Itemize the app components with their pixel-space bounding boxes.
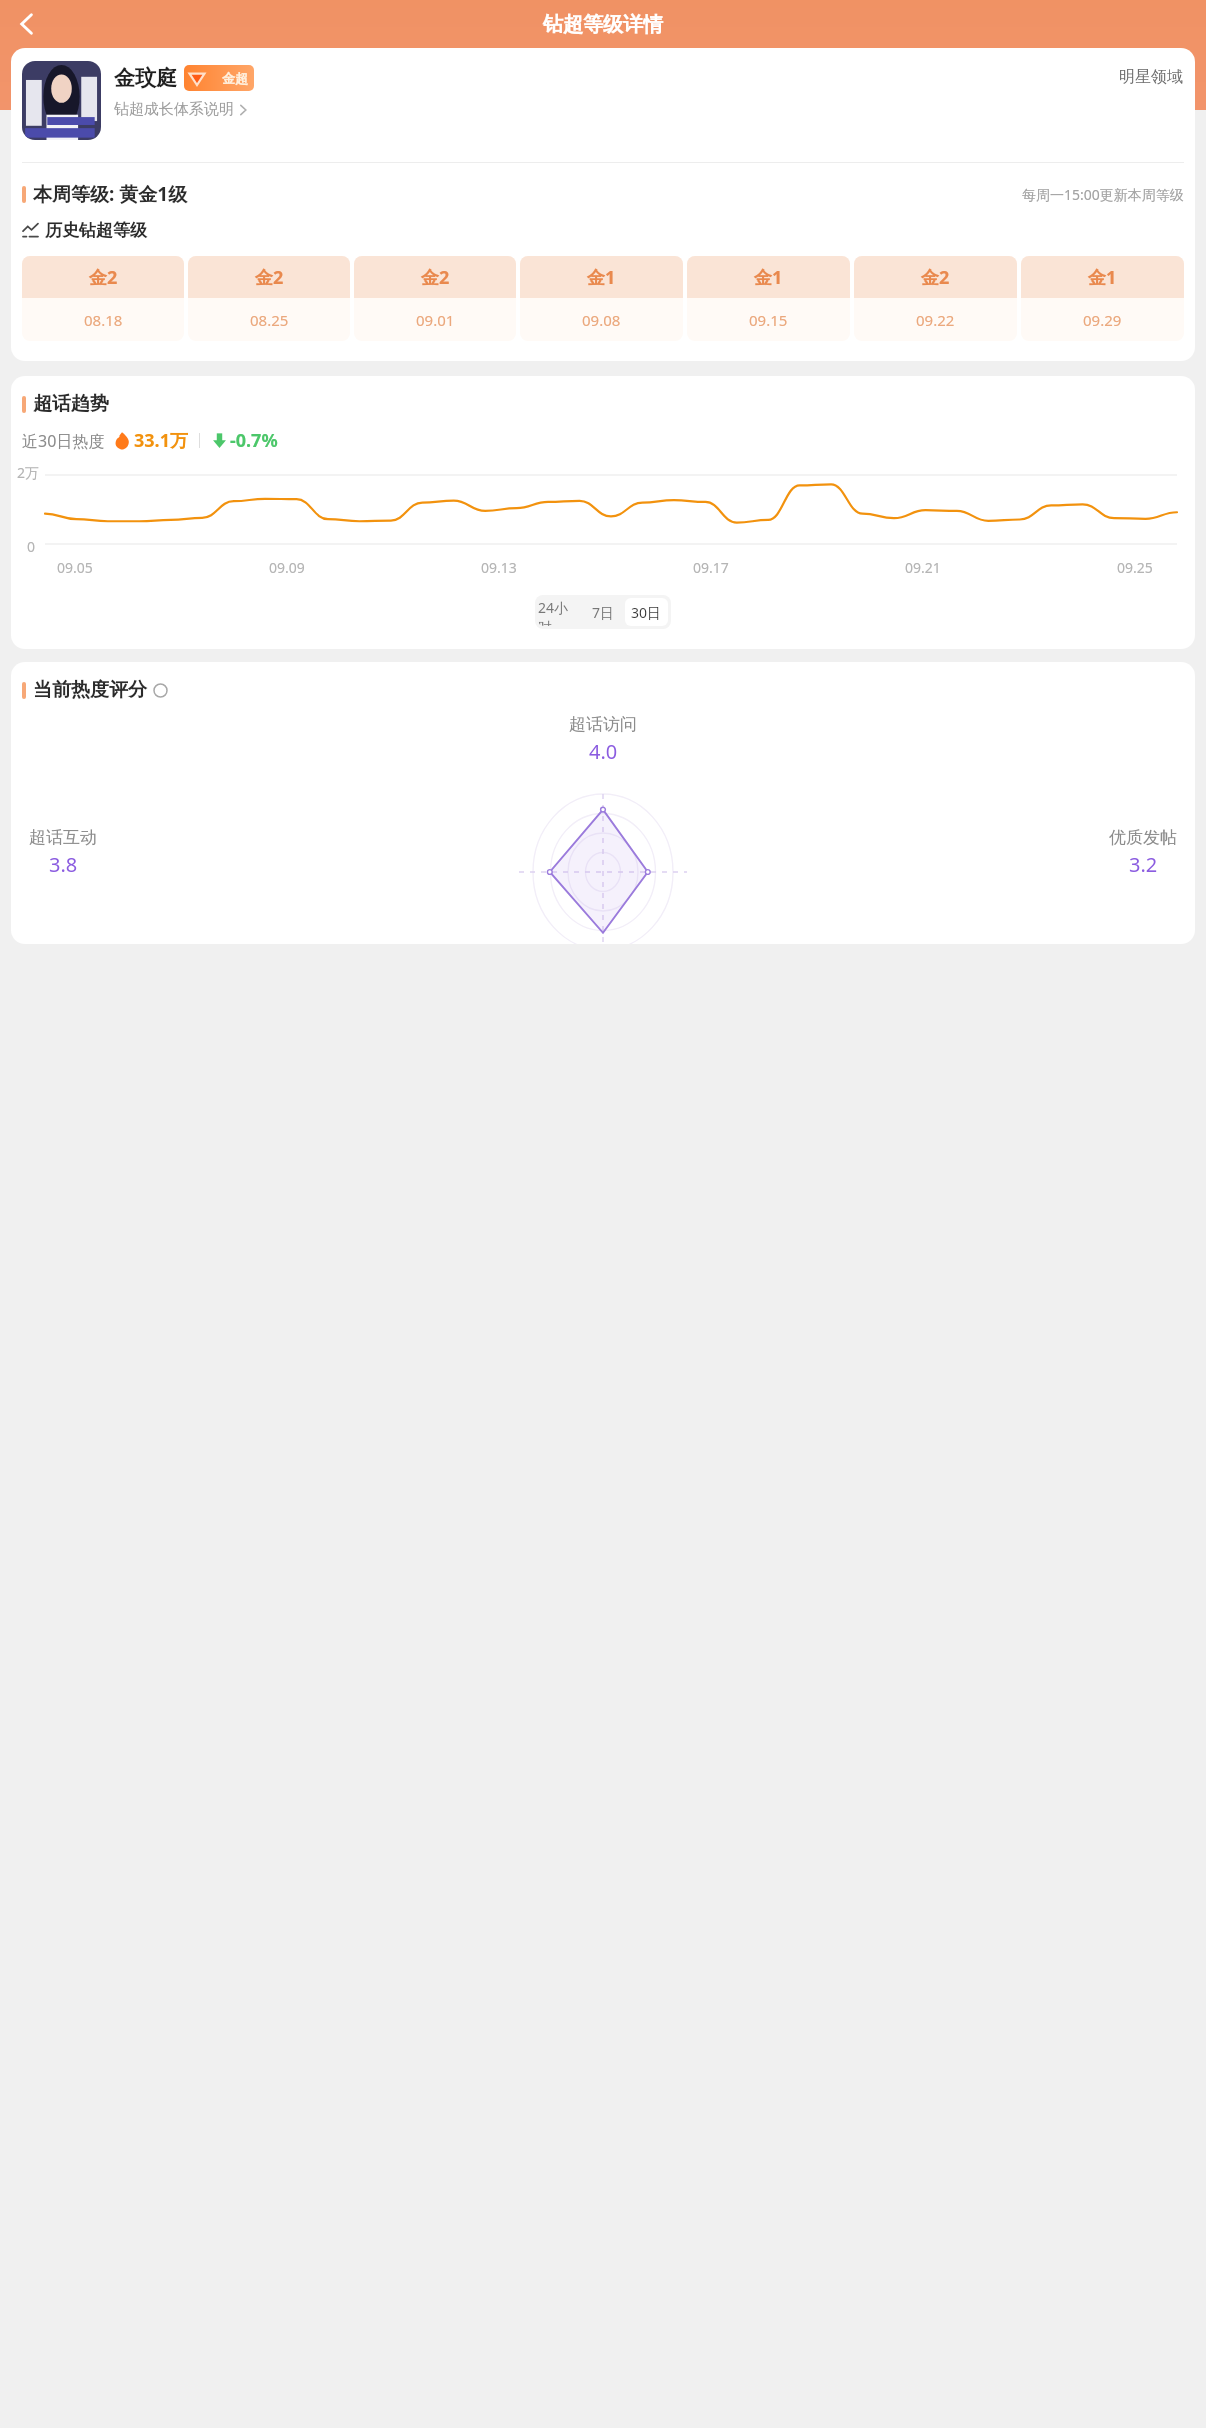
button[interactable]: 7日 (582, 598, 625, 626)
staticText: 超话互动 (29, 827, 97, 848)
staticText: 33.1万 (134, 428, 188, 453)
staticText: 金1 (754, 265, 783, 290)
staticText: 09.15 (749, 310, 788, 330)
staticText: 优质发帖 (1109, 827, 1177, 848)
button[interactable]: 金2 (22, 256, 184, 341)
staticText: 3.8 (49, 851, 78, 878)
staticText: 2万 (17, 463, 40, 482)
staticText: 金1 (587, 265, 616, 290)
staticText: 金2 (421, 265, 450, 290)
staticText: 历史钻超等级 (45, 220, 147, 241)
button[interactable]: 24小时 (538, 598, 582, 626)
staticText: 08.18 (84, 310, 123, 330)
staticText: 4.0 (589, 738, 618, 765)
staticText: 08.25 (250, 310, 289, 330)
button[interactable]: 金2 (188, 256, 350, 341)
staticText: 钻超成长体系说明 (114, 100, 234, 119)
staticText: 09.13 (481, 558, 517, 577)
staticText: 金2 (89, 265, 118, 290)
staticText: 当前热度评分 (33, 678, 147, 702)
button[interactable]: 金1 (520, 256, 683, 341)
staticText: 钻超等级详情 (543, 12, 663, 37)
staticText: 30日 (631, 603, 662, 622)
staticText: 09.25 (1117, 558, 1153, 577)
staticText: 09.09 (269, 558, 305, 577)
staticText: 超话趋势 (33, 392, 109, 416)
staticText: -0.7% (230, 428, 278, 453)
staticText: 09.21 (905, 558, 941, 577)
button[interactable]: Back (2, 0, 52, 48)
staticText: 金1 (1088, 265, 1117, 290)
staticText: 09.17 (693, 558, 729, 577)
staticText: 每周一15:00更新本周等级 (1022, 185, 1184, 204)
staticText: 24小时 (538, 598, 582, 626)
staticText: 金2 (921, 265, 950, 290)
staticText: 明星领域 (1119, 67, 1183, 87)
staticText: 0 (27, 537, 36, 556)
staticText: 近30日热度 (22, 430, 105, 452)
staticText: 09.08 (582, 310, 621, 330)
staticText: 金超 (222, 70, 248, 86)
button[interactable]: 金1 (687, 256, 850, 341)
staticText: 7日 (592, 603, 615, 622)
staticText: 金2 (255, 265, 284, 290)
staticText: 3.2 (1129, 851, 1158, 878)
staticText: 超话访问 (569, 714, 637, 735)
button[interactable]: 30日 (625, 598, 668, 626)
staticText: 09.05 (57, 558, 93, 577)
staticText: 本周等级: 黄金1级 (33, 181, 188, 207)
staticText: 09.01 (416, 310, 455, 330)
staticText: 金玟庭 (114, 65, 177, 91)
button[interactable]: 金2 (354, 256, 516, 341)
button[interactable]: 金2 (854, 256, 1017, 341)
button[interactable]: 钻超成长体系说明 (114, 100, 248, 119)
staticText: 09.22 (916, 310, 955, 330)
button[interactable]: 金1 (1021, 256, 1184, 341)
staticText: 09.29 (1083, 310, 1122, 330)
